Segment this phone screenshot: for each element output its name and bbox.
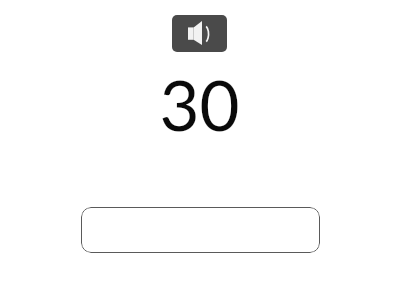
button[interactable]: Volume [172, 15, 227, 52]
staticText: 30 [159, 63, 240, 146]
button[interactable]: Volume level [81, 207, 320, 253]
